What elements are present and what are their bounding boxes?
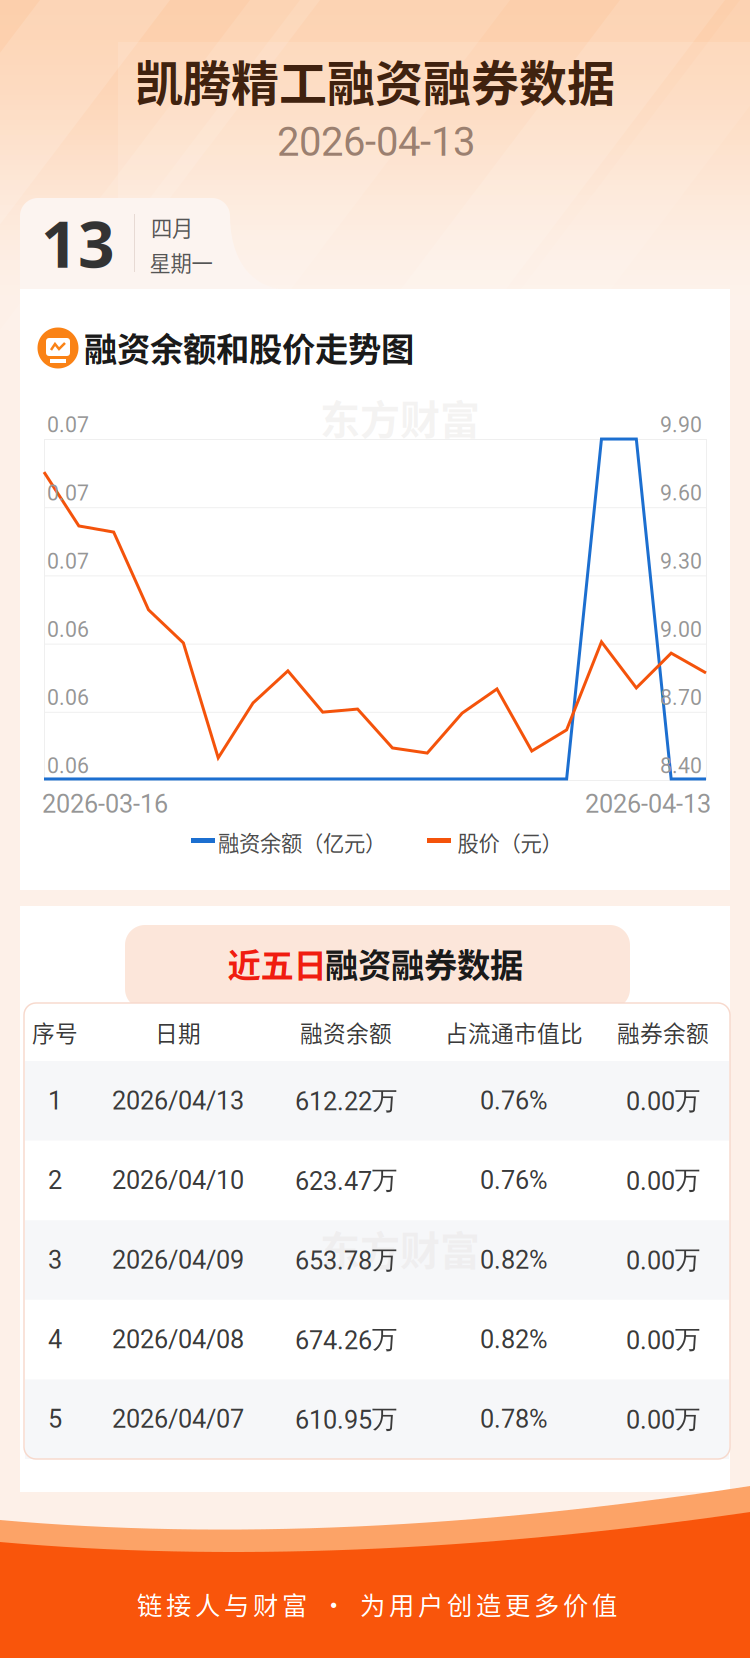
staticText: 0.06 bbox=[47, 753, 89, 778]
staticText: 星期一 bbox=[149, 247, 212, 277]
staticText: 2 bbox=[48, 1166, 62, 1195]
staticText: 2026/04/08 bbox=[112, 1325, 244, 1354]
button[interactable]: 链接人与财富 · 为用户创造更多价值 bbox=[97, 1576, 657, 1632]
staticText: 8.70 bbox=[660, 685, 702, 710]
staticText: 0.07 bbox=[47, 412, 89, 437]
staticText: 2026/04/10 bbox=[112, 1166, 244, 1195]
staticText: 623.47万 bbox=[295, 1164, 397, 1196]
staticText: 2026-04-13 bbox=[277, 119, 475, 165]
staticText: 653.78万 bbox=[295, 1244, 397, 1276]
staticText: 序号 bbox=[32, 1016, 78, 1048]
staticText: 四月 bbox=[151, 212, 193, 242]
staticText: 近五日 bbox=[227, 939, 326, 987]
staticText: 链接人与财富 · 为用户创造更多价值 bbox=[137, 1586, 617, 1622]
staticText: 2026/04/07 bbox=[112, 1404, 244, 1434]
staticText: 2026/04/09 bbox=[112, 1245, 244, 1275]
staticText: 13 bbox=[41, 199, 115, 287]
staticText: 0.06 bbox=[47, 685, 89, 710]
staticText: 股价（元） bbox=[457, 827, 562, 857]
staticText: 674.26万 bbox=[295, 1324, 397, 1355]
staticText: 0.76% bbox=[480, 1166, 548, 1195]
staticText: 融资余额和股价走势图 bbox=[84, 323, 414, 371]
staticText: 610.95万 bbox=[295, 1403, 397, 1435]
staticText: 9.90 bbox=[660, 412, 702, 437]
staticText: 0.00万 bbox=[626, 1244, 700, 1276]
staticText: 占流通市值比 bbox=[445, 1016, 583, 1048]
staticText: 1 bbox=[48, 1086, 62, 1116]
staticText: 9.60 bbox=[660, 481, 702, 506]
staticText: 日期 bbox=[155, 1016, 201, 1048]
staticText: 0.00万 bbox=[626, 1403, 700, 1435]
staticText: 0.07 bbox=[47, 549, 89, 574]
staticText: 0.82% bbox=[480, 1245, 548, 1275]
staticText: 0.07 bbox=[47, 481, 89, 506]
staticText: 0.06 bbox=[47, 617, 89, 642]
staticText: 0.00万 bbox=[626, 1085, 700, 1117]
staticText: 0.00万 bbox=[626, 1164, 700, 1196]
staticText: 4 bbox=[48, 1325, 62, 1354]
staticText: 2026-04-13 bbox=[585, 789, 711, 819]
staticText: 2026/04/13 bbox=[112, 1086, 244, 1116]
staticText: 9.30 bbox=[660, 549, 702, 574]
staticText: 融券余额 bbox=[617, 1016, 709, 1048]
staticText: 8.40 bbox=[660, 753, 702, 778]
staticText: 融资余额 bbox=[300, 1016, 392, 1048]
staticText: 东方财富 bbox=[320, 388, 480, 446]
staticText: 融资余额（亿元） bbox=[218, 827, 386, 857]
staticText: 3 bbox=[48, 1245, 62, 1275]
staticText: 9.00 bbox=[660, 617, 702, 642]
staticText: 5 bbox=[48, 1404, 62, 1434]
staticText: 2026-03-16 bbox=[42, 789, 168, 819]
staticText: 0.78% bbox=[480, 1404, 548, 1434]
staticText: 东方财富 bbox=[320, 1219, 480, 1277]
staticText: 0.82% bbox=[480, 1325, 548, 1354]
staticText: 0.00万 bbox=[626, 1324, 700, 1355]
staticText: 0.76% bbox=[480, 1086, 548, 1116]
staticText: 凯腾精工融资融券数据 bbox=[135, 45, 615, 115]
staticText: 612.22万 bbox=[295, 1085, 397, 1117]
staticText: 融资融券数据 bbox=[325, 939, 523, 987]
